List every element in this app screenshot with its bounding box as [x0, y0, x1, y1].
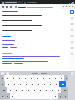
button[interactable]: Shift — [0, 87, 7, 93]
button[interactable]: Sidebar action — [70, 22, 74, 26]
button[interactable]: Letter — [58, 75, 64, 81]
button[interactable]: Letter — [31, 87, 37, 93]
button[interactable]: Comma — [10, 93, 15, 99]
button[interactable]: Letter — [17, 81, 23, 87]
button[interactable] — [2, 44, 14, 47]
button[interactable]: Letter — [53, 81, 59, 87]
button[interactable]: Sidebar action — [70, 34, 74, 38]
button[interactable]: Sidebar action — [70, 46, 74, 50]
button[interactable] — [2, 24, 68, 29]
button[interactable] — [14, 5, 61, 9]
button[interactable]: Symbols — [0, 93, 5, 99]
button[interactable]: Extensions — [65, 5, 68, 8]
button[interactable]: Shift — [61, 87, 68, 93]
button[interactable]: Letter — [34, 75, 40, 81]
button[interactable]: Letter — [11, 81, 17, 87]
button[interactable]: Letter — [10, 75, 16, 81]
button[interactable]: Profile — [68, 5, 71, 8]
button[interactable]: Letter — [29, 81, 35, 87]
button[interactable]: Tab — [0, 75, 4, 81]
button[interactable]: Period — [53, 93, 58, 99]
button[interactable]: Letter — [40, 75, 46, 81]
button[interactable]: Letter — [43, 87, 49, 93]
button[interactable] — [2, 36, 11, 40]
button[interactable]: Hide keyboard — [63, 93, 68, 99]
button[interactable]: Letter — [41, 81, 47, 87]
button[interactable]: Letter — [7, 87, 13, 93]
button[interactable]: Back — [1, 5, 5, 9]
button[interactable]: Letter — [25, 87, 31, 93]
button[interactable]: Minimize — [68, 2, 70, 4]
button[interactable]: Letter — [5, 81, 11, 87]
button[interactable]: Letter — [16, 75, 22, 81]
button[interactable]: Emoji — [5, 93, 10, 99]
button[interactable] — [2, 19, 68, 24]
button[interactable]: Enter — [59, 81, 66, 87]
button[interactable]: Sidebar action — [70, 40, 74, 44]
button[interactable] — [2, 29, 68, 34]
button[interactable] — [23, 1, 43, 4]
button[interactable]: Sidebar action — [70, 28, 74, 32]
button[interactable]: Letter — [22, 75, 28, 81]
button[interactable]: Sidebar action — [70, 52, 74, 56]
button[interactable]: Letter — [4, 75, 10, 81]
button[interactable]: Letter — [37, 87, 43, 93]
button[interactable]: Compose — [70, 10, 74, 14]
button[interactable]: Letter — [52, 75, 58, 81]
button[interactable]: Caps lock — [0, 81, 5, 87]
button[interactable]: Letter — [19, 87, 25, 93]
button[interactable]: Letter — [35, 81, 41, 87]
button[interactable] — [1, 1, 23, 4]
button[interactable]: Backspace — [64, 75, 68, 81]
button[interactable]: Letter — [28, 75, 34, 81]
button[interactable]: Reload — [9, 5, 13, 9]
button[interactable]: Language — [58, 93, 63, 99]
button[interactable] — [2, 14, 68, 19]
button[interactable]: Forward — [5, 5, 9, 9]
button[interactable]: Bookmark — [62, 5, 65, 8]
button[interactable]: Maximize — [70, 2, 72, 4]
button[interactable]: Letter — [46, 75, 52, 81]
button[interactable]: Letter — [55, 87, 61, 93]
button[interactable]: More — [71, 5, 74, 8]
button[interactable] — [2, 40, 15, 44]
button[interactable]: Letter — [13, 87, 19, 93]
button[interactable]: Letter — [23, 81, 29, 87]
button[interactable]: Letter — [47, 81, 53, 87]
button[interactable]: Letter — [49, 87, 55, 93]
button[interactable]: Sidebar action — [70, 16, 74, 20]
